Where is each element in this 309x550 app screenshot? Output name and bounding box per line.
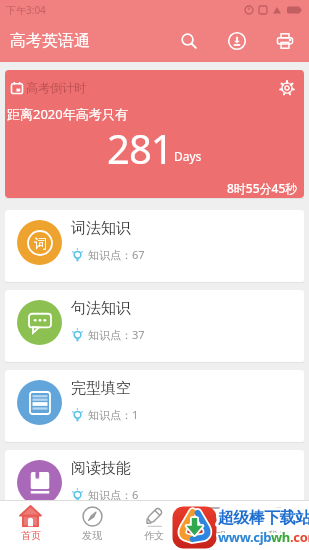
- staticText: Days: [174, 148, 202, 164]
- staticText: 知识点：37: [88, 327, 145, 342]
- staticText: 完型填空: [71, 379, 131, 398]
- staticText: 发现: [82, 529, 102, 542]
- staticText: 高考倒计时: [26, 80, 86, 95]
- button[interactable]: 句法知识: [5, 290, 304, 362]
- staticText: 超级棒下载站: [218, 508, 309, 528]
- staticText: 下午3:04: [6, 3, 46, 17]
- staticText: 距离2020年高考只有: [7, 105, 128, 123]
- button[interactable]: [217, 21, 257, 61]
- button[interactable]: 课程: [185, 501, 247, 550]
- button[interactable]: [265, 21, 305, 61]
- staticText: www.cjbwh.com: [218, 528, 309, 546]
- button[interactable]: 高考倒计时: [5, 70, 304, 198]
- button[interactable]: 发现: [61, 501, 123, 550]
- staticText: 知识点：6: [88, 487, 139, 502]
- staticText: www.cjbwh.com: [218, 528, 309, 546]
- staticText: 词法知识: [71, 219, 131, 238]
- staticText: 句法知识: [71, 299, 131, 318]
- staticText: 281: [107, 121, 173, 175]
- button[interactable]: 阅读技能: [5, 450, 304, 522]
- staticText: 我的: [268, 529, 288, 542]
- staticText: 知识点：1: [88, 407, 139, 422]
- button[interactable]: [277, 78, 297, 98]
- staticText: 超级棒下载站: [218, 508, 309, 528]
- button[interactable]: 我的: [247, 501, 309, 550]
- staticText: 课程: [206, 529, 226, 542]
- button[interactable]: [169, 21, 209, 61]
- staticText: 阅读技能: [71, 459, 131, 478]
- staticText: 知识点：67: [88, 247, 145, 262]
- staticText: 8时55分45秒: [227, 180, 298, 196]
- staticText: 高考英语通: [10, 31, 90, 51]
- staticText: 首页: [21, 529, 41, 542]
- button[interactable]: 首页: [0, 501, 61, 550]
- staticText: 作文: [144, 529, 164, 542]
- button[interactable]: 完型填空: [5, 370, 304, 442]
- button[interactable]: 词: [5, 210, 304, 282]
- staticText: 词: [34, 235, 47, 251]
- button[interactable]: 作文: [123, 501, 185, 550]
